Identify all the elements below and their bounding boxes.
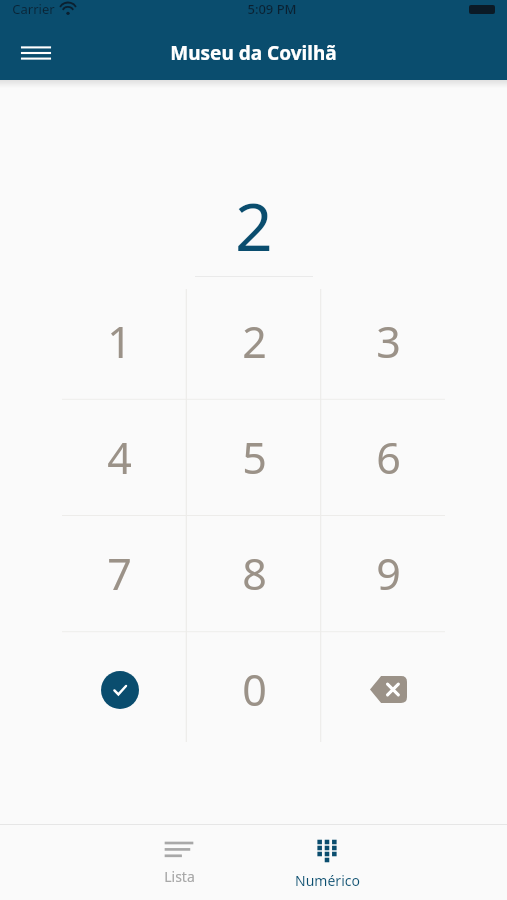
staticText: 4 [107, 428, 132, 487]
staticText: 0 [242, 660, 267, 719]
staticText: 7 [107, 544, 132, 603]
button[interactable]: Backspace [321, 631, 455, 748]
button[interactable]: 0 [187, 631, 321, 748]
staticText: 5 [242, 428, 267, 487]
staticText: 3 [376, 312, 401, 371]
button[interactable]: Lista [105, 825, 253, 900]
staticText: 2 [235, 180, 273, 270]
staticText: 6 [376, 428, 401, 487]
button[interactable]: Menu [12, 29, 60, 77]
button[interactable]: 4 [52, 399, 187, 515]
staticText: 5:09 PM [247, 0, 297, 18]
staticText: Carrier [12, 0, 55, 18]
button[interactable]: 7 [52, 515, 187, 631]
button[interactable]: 8 [187, 515, 321, 631]
button[interactable]: 3 [321, 283, 455, 399]
button[interactable]: Confirm [52, 631, 187, 748]
staticText: 9 [376, 544, 401, 603]
button[interactable]: 1 [52, 283, 187, 399]
button[interactable]: 2 [187, 283, 321, 399]
staticText: 8 [242, 544, 267, 603]
staticText: Museu da Covilhã [170, 40, 337, 66]
staticText: 2 [242, 312, 267, 371]
button[interactable]: 6 [321, 399, 455, 515]
staticText: Lista [164, 867, 195, 886]
button[interactable]: Numérico [253, 825, 401, 900]
staticText: 1 [107, 312, 132, 371]
button[interactable]: 9 [321, 515, 455, 631]
button[interactable]: 5 [187, 399, 321, 515]
staticText: Numérico [295, 871, 360, 890]
